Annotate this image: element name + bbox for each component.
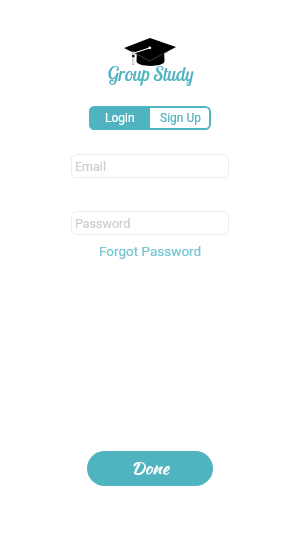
staticText: Forgot Password <box>99 243 202 259</box>
staticText: Login <box>105 111 135 125</box>
staticText: Group Study <box>107 62 194 86</box>
staticText: Password <box>75 216 131 231</box>
button[interactable]: Sign Up <box>150 106 211 130</box>
button[interactable]: Login <box>89 106 150 130</box>
staticText: Email <box>75 159 106 174</box>
staticText: Done <box>131 455 169 480</box>
staticText: Sign Up <box>160 111 201 125</box>
button[interactable]: Password <box>71 211 229 235</box>
other: Group Study logo <box>124 38 176 66</box>
button[interactable]: Email <box>71 154 229 178</box>
button[interactable]: Forgot Password <box>99 243 202 259</box>
button[interactable]: Done <box>87 451 213 486</box>
